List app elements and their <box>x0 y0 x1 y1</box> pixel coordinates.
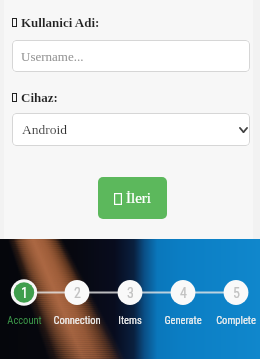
staticText: Account <box>7 314 42 326</box>
button[interactable]: İleri <box>98 177 167 219</box>
staticText: 2 <box>74 285 81 301</box>
staticText: 4 <box>180 285 187 301</box>
staticText: 1 <box>21 285 28 301</box>
staticText: Items <box>118 314 142 326</box>
staticText: Connection <box>53 314 101 326</box>
button[interactable]: Android <box>12 113 250 146</box>
staticText: 3 <box>127 285 134 301</box>
staticText: Kullanici Adi: <box>21 15 100 29</box>
staticText: Android <box>22 122 67 137</box>
staticText: Generate <box>164 314 202 326</box>
button[interactable]: 4 <box>157 285 209 335</box>
button[interactable]: 1 <box>0 285 50 335</box>
staticText: Username... <box>21 49 84 63</box>
staticText: İleri <box>126 190 151 207</box>
staticText: 5 <box>233 285 240 301</box>
button[interactable]: 3 <box>104 285 156 335</box>
staticText: Cihaz: <box>21 90 58 104</box>
button[interactable]: 5 <box>210 285 260 335</box>
other: Open device list <box>239 127 248 133</box>
button[interactable]: Username... <box>12 40 250 72</box>
staticText: Complete <box>216 314 256 326</box>
button[interactable]: 2 <box>51 285 103 335</box>
